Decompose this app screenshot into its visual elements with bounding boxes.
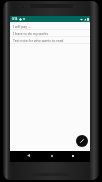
button[interactable]: I have to do my works (10, 30, 90, 37)
button[interactable]: I will pay ... (10, 23, 90, 30)
button[interactable]: Test note for who wants to read (10, 37, 90, 44)
staticText: I have to do my works (13, 31, 49, 36)
staticText: Test note for who wants to read (13, 38, 64, 43)
button[interactable]: Recent apps (66, 151, 79, 160)
button[interactable]: Back (22, 151, 35, 160)
button[interactable]: Home (45, 151, 58, 160)
button[interactable]: New note (76, 135, 88, 147)
staticText: I will pay ... (13, 24, 31, 29)
staticText: 3:14 (12, 17, 18, 21)
